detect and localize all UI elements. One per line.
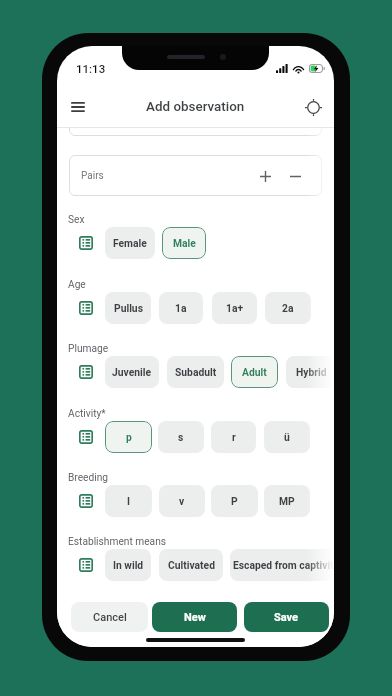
button[interactable]: 1a+	[212, 292, 257, 324]
button[interactable]: New	[152, 602, 237, 632]
staticText: Escaped from captivity	[233, 559, 334, 571]
staticText: r	[232, 431, 236, 443]
button[interactable]: Save	[244, 602, 329, 632]
staticText: Establishment means	[68, 536, 167, 548]
button[interactable]: Pairs	[69, 155, 322, 196]
staticText: s	[178, 431, 184, 443]
staticText: 1a+	[226, 302, 244, 314]
staticText: Subadult	[175, 366, 217, 378]
staticText: 2a	[282, 302, 294, 314]
staticText: Pairs	[81, 170, 104, 182]
staticText: Save	[274, 611, 299, 624]
staticText: P	[231, 495, 238, 507]
button[interactable]: I	[105, 485, 152, 517]
button[interactable]: MP	[264, 485, 310, 517]
staticText: ü	[284, 431, 290, 443]
staticText: Male	[173, 237, 196, 249]
button[interactable]: p	[105, 421, 152, 453]
button[interactable]: Increase	[253, 164, 277, 188]
button[interactable]: Pullus	[105, 292, 151, 324]
button[interactable]: Cancel	[71, 602, 148, 632]
staticText: Adult	[242, 366, 267, 378]
staticText: Female	[113, 237, 147, 249]
button[interactable]: Cultivated	[159, 549, 223, 581]
button[interactable]: ü	[264, 421, 310, 453]
button[interactable]: Decrease	[283, 164, 307, 188]
button[interactable]: In wild	[105, 549, 151, 581]
button[interactable]: Adult	[231, 356, 278, 388]
staticText: I	[127, 495, 131, 507]
button[interactable]: Female	[105, 227, 155, 259]
button[interactable]: r	[211, 421, 256, 453]
staticText: Cultivated	[168, 559, 215, 571]
staticText: Pullus	[114, 302, 143, 314]
staticText: Plumage	[68, 343, 109, 355]
button[interactable]: Subadult	[167, 356, 224, 388]
button[interactable]: Escaped from captivity	[230, 549, 334, 581]
staticText: 11:13	[76, 62, 106, 75]
button[interactable]: 1a	[159, 292, 203, 324]
button[interactable]: 2a	[265, 292, 311, 324]
staticText: Hybrid	[296, 366, 327, 378]
button[interactable]: Juvenile	[105, 356, 159, 388]
staticText: Sex	[68, 214, 85, 226]
button[interactable]: P	[211, 485, 258, 517]
staticText: v	[179, 495, 185, 507]
staticText: Add observation	[146, 99, 245, 115]
button[interactable]: v	[159, 485, 205, 517]
button[interactable]: My location	[297, 91, 329, 123]
staticText: New	[184, 611, 206, 624]
staticText: Age	[68, 279, 86, 291]
button[interactable]: Hybrid	[286, 356, 334, 388]
staticText: 1a	[175, 302, 187, 314]
staticText: Breeding	[68, 472, 109, 484]
staticText: p	[126, 431, 132, 443]
staticText: Cancel	[93, 611, 127, 624]
button[interactable]: Male	[162, 227, 206, 259]
staticText: MP	[279, 495, 295, 507]
button[interactable]: s	[158, 421, 204, 453]
staticText: Juvenile	[112, 366, 152, 378]
staticText: In wild	[113, 559, 144, 571]
button[interactable]: Open navigation menu	[62, 91, 94, 123]
staticText: Activity*	[68, 408, 106, 420]
